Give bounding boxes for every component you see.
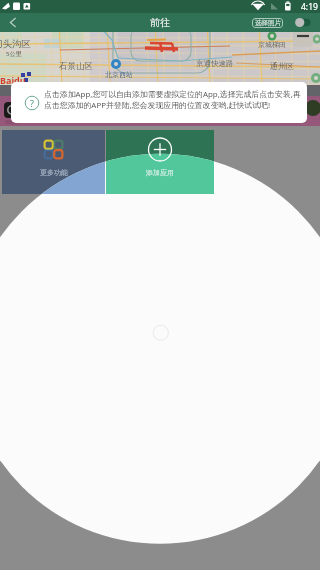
staticText: 添加应用 [146,168,174,177]
button[interactable]: 添加应用 [106,130,214,194]
staticText: 石景山区 [59,61,93,72]
staticText: 通州区 [270,61,294,71]
button[interactable]: 更多功能 [2,130,105,194]
staticText: Baidu [0,74,26,86]
staticText: 更多功能 [40,168,68,177]
button[interactable]: ? [11,82,307,123]
button[interactable]: Back [0,13,26,32]
staticText: 门头沟区 [0,38,31,50]
button[interactable]: 选择照片 [252,18,283,28]
staticText: 5公里 [6,50,22,58]
staticText: 京城梯田 [258,40,286,49]
staticText: 前往 [150,16,170,29]
staticText: 点击添加App,您可以自由添加需要虚拟定位的App,选择完成后点击安装,再点击您… [44,89,307,111]
staticText: 4:19 [301,1,318,13]
staticText: ? [30,97,34,109]
button[interactable]: Toggle switch [294,17,312,28]
staticText: 京通快速路 [196,59,234,68]
staticText: 北京西站 [105,70,133,79]
staticText: 选择照片 [255,19,281,27]
staticText: 添加应用 [146,168,174,177]
staticText: 更多功能 [40,168,68,177]
